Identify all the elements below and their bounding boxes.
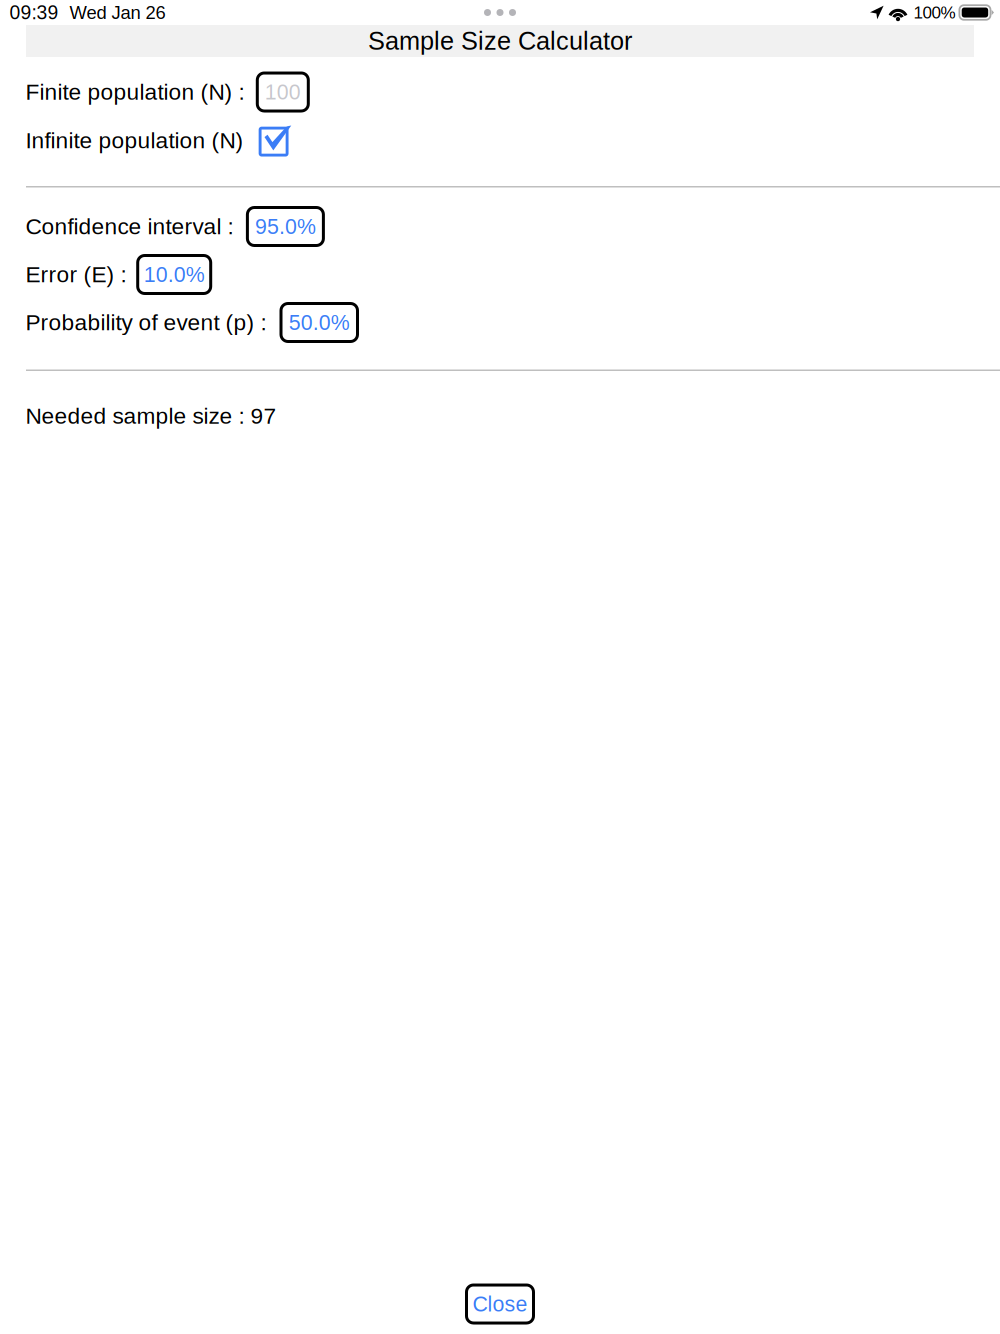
- button[interactable]: 100: [257, 73, 308, 111]
- staticText: Wed Jan 26: [69, 2, 165, 23]
- button[interactable]: Infinite population toggle: [260, 125, 292, 155]
- staticText: 09:39: [9, 2, 58, 23]
- staticText: Error (E) :: [25, 262, 126, 287]
- staticText: Needed sample size : 97: [25, 403, 276, 429]
- button[interactable]: 95.0%: [247, 207, 323, 245]
- staticText: Finite population (N) :: [25, 79, 244, 105]
- staticText: 50.0%: [289, 311, 350, 334]
- staticText: Infinite population (N): [25, 128, 243, 153]
- button[interactable]: 50.0%: [281, 303, 357, 341]
- button[interactable]: Close: [466, 1285, 533, 1323]
- staticText: 100: [265, 80, 301, 104]
- staticText: Confidence interval :: [25, 214, 233, 239]
- staticText: Probability of event (p) :: [25, 310, 266, 335]
- staticText: 95.0%: [255, 215, 316, 238]
- staticText: 10.0%: [144, 263, 205, 286]
- staticText: Close: [472, 1292, 527, 1316]
- button[interactable]: 10.0%: [138, 255, 211, 293]
- staticText: Sample Size Calculator: [368, 27, 632, 55]
- staticText: 100%: [913, 3, 955, 22]
